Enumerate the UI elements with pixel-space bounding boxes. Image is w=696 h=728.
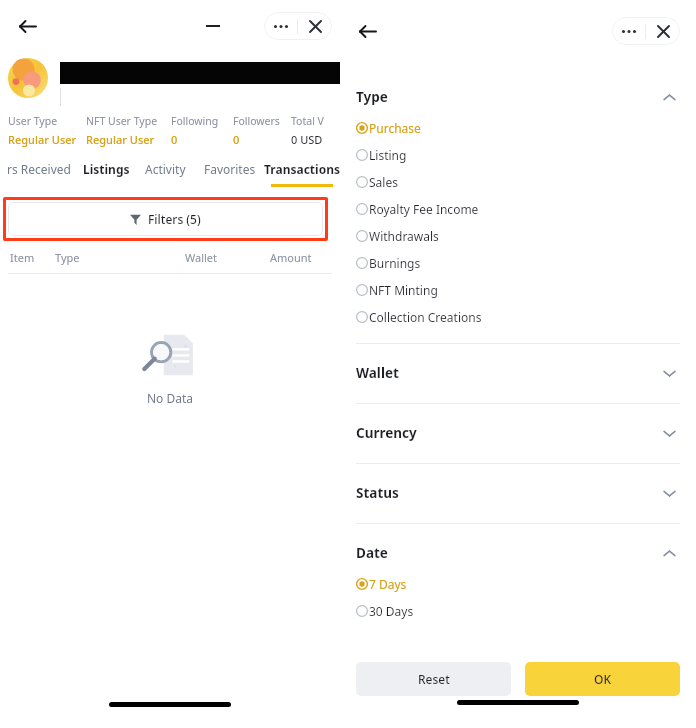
staticText: Collection Creations (369, 309, 482, 325)
button[interactable]: Back (8, 6, 48, 46)
button[interactable]: Close (298, 12, 332, 40)
staticText: Following (171, 114, 219, 128)
button[interactable]: Reset (356, 662, 511, 696)
button[interactable]: Listing (356, 141, 680, 168)
button[interactable]: Burnings (356, 249, 680, 276)
button[interactable]: Filters (5) (8, 202, 323, 236)
button[interactable]: Withdrawals (356, 222, 680, 249)
button[interactable]: 7 Days (356, 570, 680, 597)
button[interactable]: Transactions (264, 161, 340, 187)
button[interactable]: Purchase (356, 114, 680, 141)
button[interactable]: Sales (356, 168, 680, 195)
staticText: Status (356, 484, 399, 502)
button[interactable]: 30 Days (356, 597, 680, 624)
other: Expand Currency (658, 422, 680, 444)
button[interactable]: Close (646, 17, 680, 45)
staticText: Wallet (356, 364, 399, 382)
button[interactable]: Activity (134, 161, 196, 184)
staticText: Listings (83, 161, 130, 177)
staticText: Type (356, 88, 388, 106)
staticText: Reset (418, 671, 450, 687)
staticText: Regular User (8, 132, 77, 147)
staticText: Burnings (369, 255, 421, 271)
staticText: Wallet (185, 250, 218, 265)
button[interactable]: Status (356, 482, 680, 504)
staticText: 30 Days (369, 603, 414, 619)
staticText: Withdrawals (369, 228, 439, 244)
button[interactable]: Currency (356, 422, 680, 444)
staticText: Date (356, 544, 388, 562)
staticText: 0 (233, 132, 240, 147)
button[interactable]: Listings (78, 161, 134, 184)
button[interactable]: Type (356, 86, 680, 108)
button[interactable]: Wallet (356, 362, 680, 384)
staticText: 0 USD (291, 132, 323, 147)
staticText: 0 (171, 132, 178, 147)
staticText: Regular User (86, 132, 155, 147)
button[interactable]: rs Received (0, 161, 78, 184)
staticText: OK (594, 671, 611, 687)
staticText: Activity (145, 161, 186, 177)
button[interactable]: Collection Creations (356, 303, 680, 330)
staticText: Favorites (204, 161, 256, 177)
other: Collapse Date (658, 542, 680, 564)
staticText: Item (10, 250, 35, 265)
button[interactable]: Date (356, 542, 680, 564)
button[interactable]: Back (348, 11, 388, 51)
button[interactable]: More options (612, 17, 645, 45)
staticText: Filters (5) (148, 211, 201, 227)
other: Expand Status (658, 482, 680, 504)
other: Expand Wallet (658, 362, 680, 384)
other: Collapse Type (658, 86, 680, 108)
button[interactable]: More options (264, 12, 297, 40)
button[interactable]: NFT Minting (356, 276, 680, 303)
staticText: 7 Days (369, 576, 407, 592)
staticText: Total V (291, 114, 324, 128)
staticText: NFT Minting (369, 282, 438, 298)
staticText: Type (55, 250, 80, 265)
staticText: Currency (356, 424, 417, 442)
button[interactable]: OK (525, 662, 680, 696)
button[interactable]: Royalty Fee Income (356, 195, 680, 222)
button[interactable]: Favorites (196, 161, 264, 184)
staticText: Sales (369, 174, 398, 190)
staticText: No Data (147, 390, 194, 406)
staticText: Transactions (264, 161, 340, 177)
staticText: Royalty Fee Income (369, 201, 479, 217)
staticText: Purchase (369, 120, 421, 136)
staticText: Amount (270, 250, 312, 265)
staticText: rs Received (7, 161, 71, 177)
staticText: Listing (369, 147, 407, 163)
staticText: NFT User Type (86, 114, 158, 128)
staticText: User Type (8, 114, 58, 128)
staticText: Followers (233, 114, 280, 128)
